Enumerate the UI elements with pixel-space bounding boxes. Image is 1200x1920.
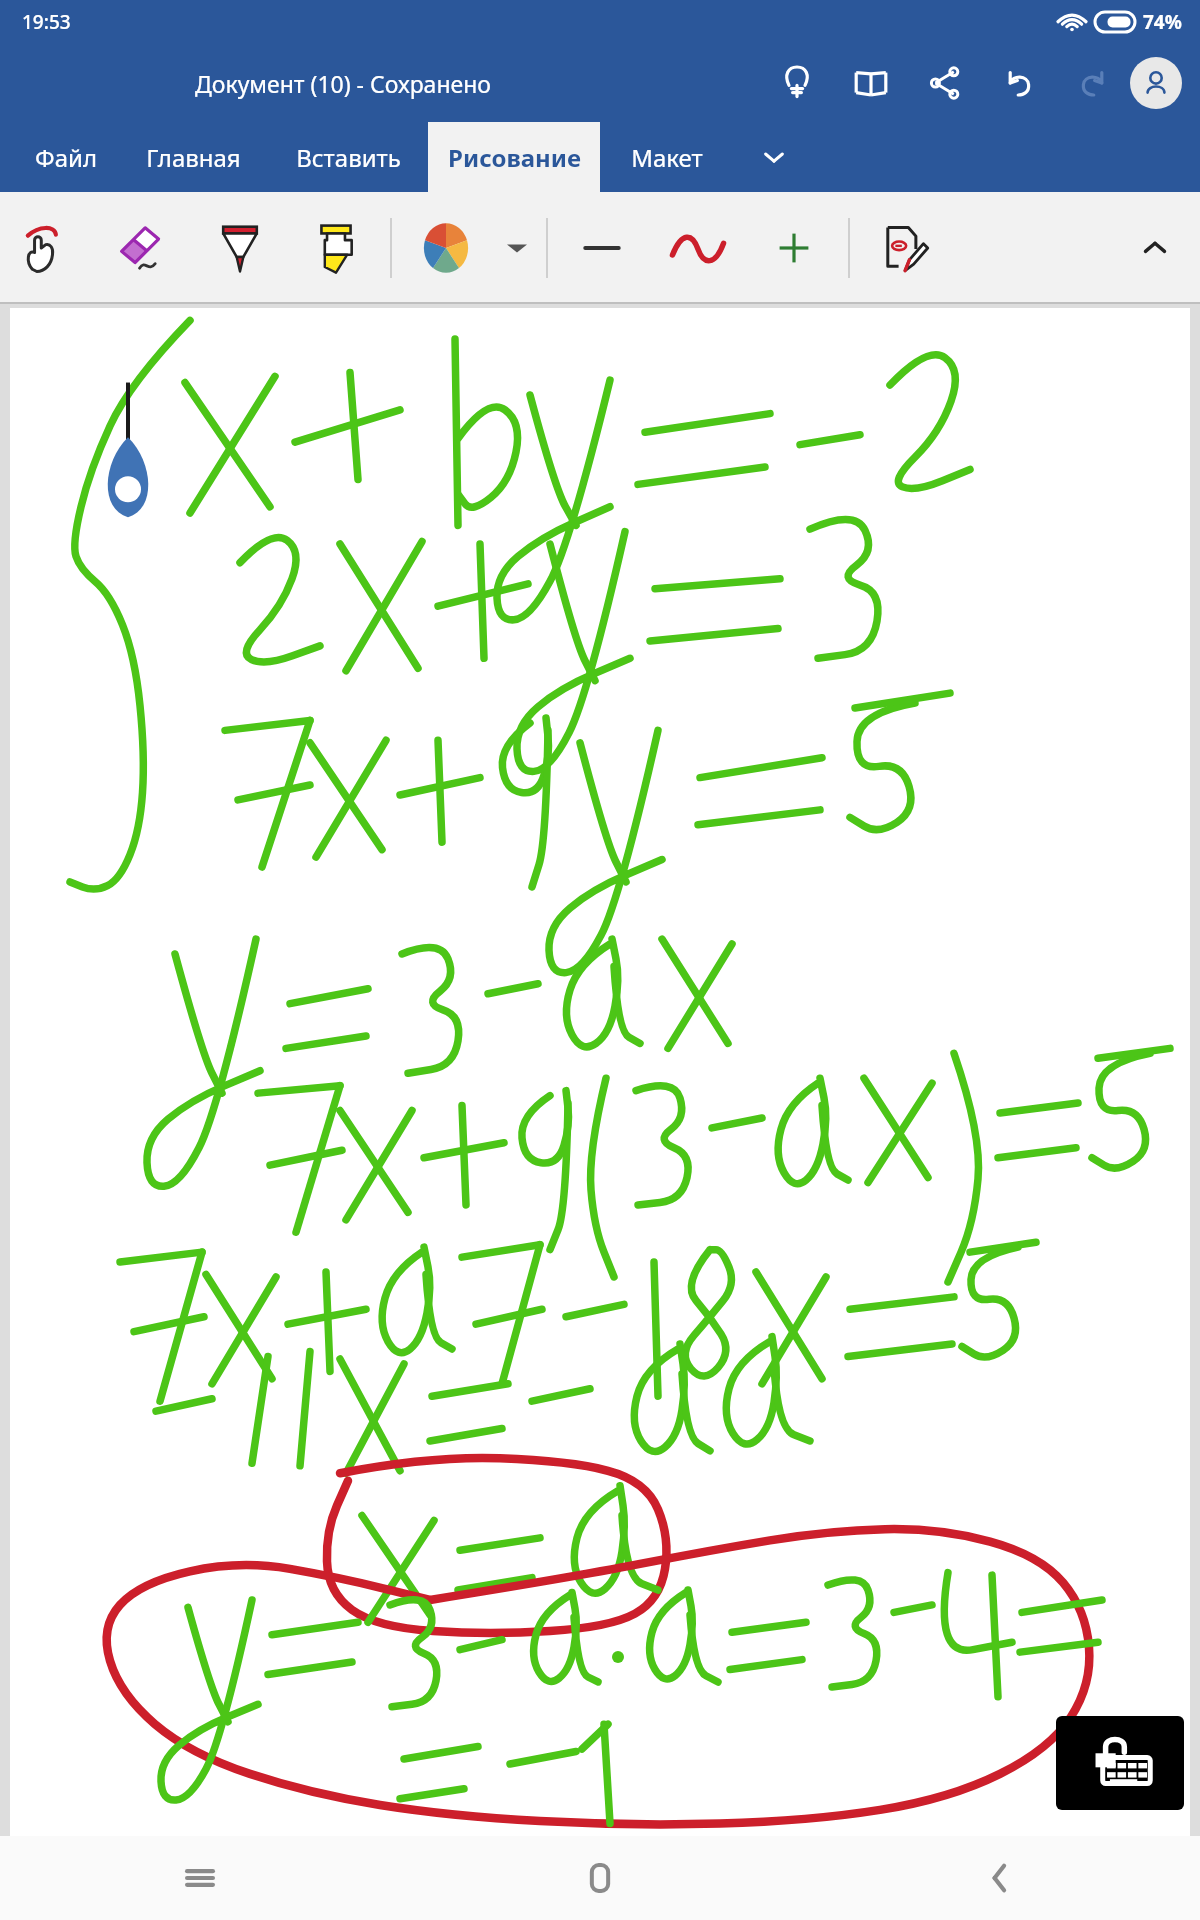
button[interactable]: Red pen bbox=[192, 192, 288, 304]
button[interactable]: Ink editor bbox=[856, 192, 952, 304]
button[interactable]: Draw with touch bbox=[0, 192, 96, 304]
staticText: Рисование bbox=[448, 141, 581, 174]
button[interactable]: Show keyboard bbox=[1056, 1716, 1184, 1810]
button[interactable]: Highlighter bbox=[288, 192, 384, 304]
button[interactable]: Read mode bbox=[834, 46, 908, 120]
button[interactable]: Рисование bbox=[428, 122, 600, 192]
staticText: 19:53 bbox=[22, 9, 71, 35]
button[interactable]: Ink color bbox=[398, 192, 494, 304]
button[interactable]: Undo bbox=[982, 46, 1056, 120]
staticText: Главная bbox=[146, 141, 241, 174]
button[interactable]: More tabs bbox=[734, 122, 814, 192]
button[interactable]: Главная bbox=[118, 122, 268, 192]
button[interactable]: Макет bbox=[600, 122, 734, 192]
button[interactable]: Color options bbox=[494, 192, 540, 304]
staticText: 74% bbox=[1143, 9, 1182, 35]
staticText: Документ (10) - Сохранено bbox=[195, 68, 491, 99]
button[interactable]: Account bbox=[1130, 57, 1182, 109]
button[interactable]: Share bbox=[908, 46, 982, 120]
button[interactable]: Back bbox=[800, 1836, 1200, 1920]
button[interactable]: Add bbox=[746, 192, 842, 304]
button[interactable]: Eraser bbox=[96, 192, 192, 304]
button[interactable]: Recent apps bbox=[0, 1836, 400, 1920]
button[interactable]: Вставить bbox=[268, 122, 428, 192]
staticText: Файл bbox=[35, 141, 97, 174]
button[interactable]: Straight line bbox=[554, 192, 650, 304]
button[interactable]: Collapse ribbon bbox=[1110, 192, 1200, 304]
staticText: Вставить bbox=[296, 141, 401, 174]
button[interactable]: Redo bbox=[1056, 46, 1130, 120]
button[interactable]: Файл bbox=[14, 122, 118, 192]
button[interactable]: Home bbox=[400, 1836, 800, 1920]
button[interactable]: Ink stroke bbox=[650, 192, 746, 304]
button[interactable]: Ideas bbox=[760, 46, 834, 120]
staticText: Макет bbox=[631, 141, 703, 174]
